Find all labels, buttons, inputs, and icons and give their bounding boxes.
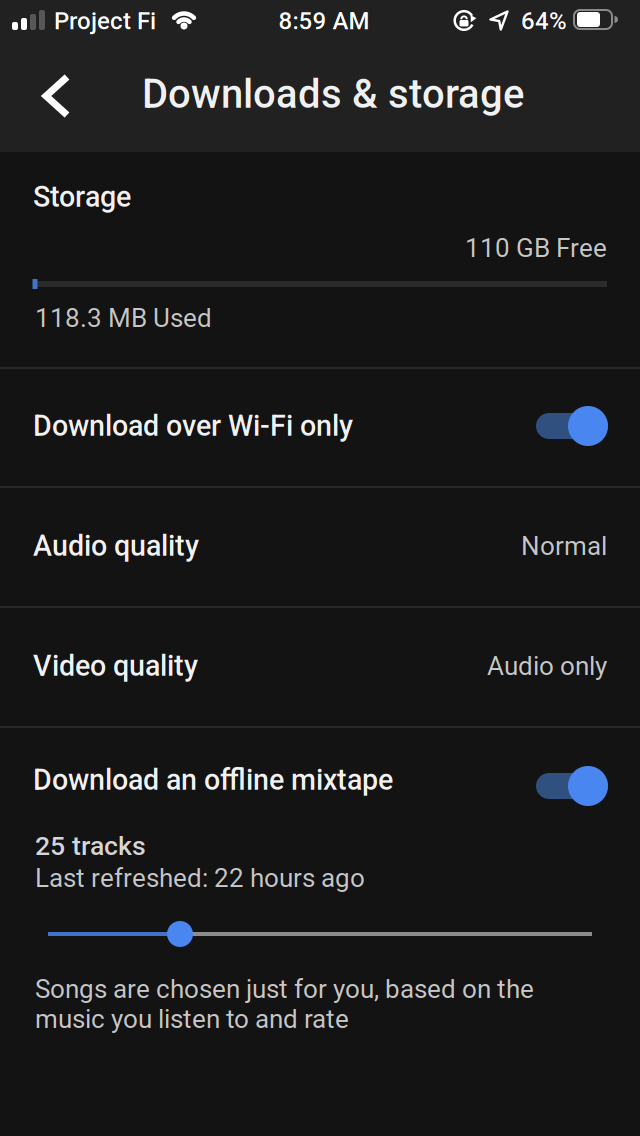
- button[interactable]: Number of tracks: [0, 912, 640, 956]
- button[interactable]: Download an offline mixtape, on: [0, 718, 640, 842]
- staticText: Storage: [33, 180, 131, 214]
- button[interactable]: Video quality: [0, 607, 640, 725]
- staticText: 110 GB Free: [465, 233, 607, 263]
- staticText: Songs are chosen just for you, based on …: [35, 974, 534, 1004]
- staticText: 8:59 AM: [278, 7, 369, 35]
- staticText: Project Fi: [54, 7, 156, 35]
- staticText: Audio only: [487, 651, 607, 681]
- staticText: 25 tracks: [35, 830, 146, 862]
- staticText: 118.3 MB Used: [35, 303, 212, 333]
- staticText: music you listen to and rate: [35, 1004, 349, 1034]
- staticText: Downloads & storage: [142, 71, 524, 117]
- button[interactable]: Audio quality: [0, 487, 640, 605]
- staticText: Normal: [521, 531, 607, 561]
- staticText: Last refreshed: 22 hours ago: [35, 863, 365, 893]
- staticText: 64%: [521, 7, 567, 35]
- staticText: Audio quality: [33, 529, 199, 563]
- staticText: Video quality: [33, 649, 198, 683]
- staticText: Download over Wi-Fi only: [33, 409, 353, 443]
- button[interactable]: Back: [24, 64, 88, 128]
- staticText: Download an offline mixtape: [33, 763, 393, 797]
- button[interactable]: Download over Wi-Fi only, on: [0, 367, 640, 484]
